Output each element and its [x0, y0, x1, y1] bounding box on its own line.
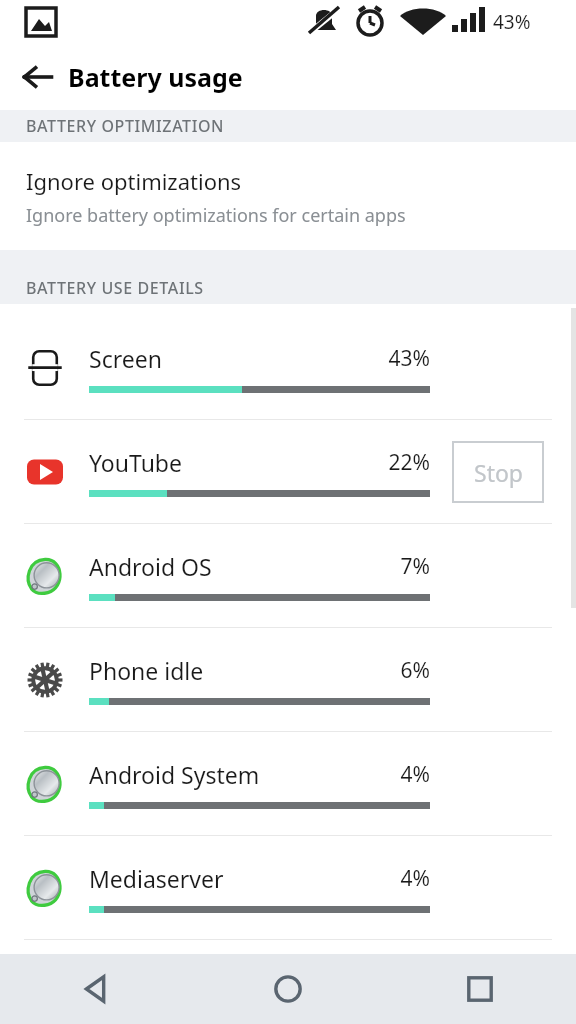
- staticText: Ignore optimizations: [26, 166, 242, 196]
- staticText: Android OS: [89, 551, 400, 582]
- staticText: Android System: [89, 759, 400, 790]
- button[interactable]: Android OS: [0, 524, 576, 627]
- staticText: 4%: [400, 760, 430, 789]
- button[interactable]: Back: [0, 954, 192, 1024]
- button[interactable]: Ignore optimizations: [0, 142, 576, 250]
- button[interactable]: Recent apps: [384, 954, 576, 1024]
- staticText: BATTERY USE DETAILS: [26, 277, 204, 299]
- staticText: 43%: [388, 344, 430, 373]
- button[interactable]: Mediaserver: [0, 836, 576, 939]
- button[interactable]: Stop: [452, 441, 544, 503]
- button[interactable]: Screen: [0, 316, 576, 419]
- staticText: Mediaserver: [89, 863, 400, 894]
- staticText: Screen: [89, 343, 388, 374]
- staticText: Ignore battery optimizations for certain…: [26, 203, 406, 228]
- staticText: Phone idle: [89, 655, 400, 686]
- staticText: 22%: [388, 448, 430, 477]
- staticText: 4%: [400, 864, 430, 893]
- staticText: Stop: [474, 457, 523, 488]
- staticText: YouTube: [89, 447, 388, 478]
- button[interactable]: Back: [14, 53, 62, 101]
- button[interactable]: Phone idle: [0, 628, 576, 731]
- button[interactable]: Home: [192, 954, 384, 1024]
- staticText: BATTERY OPTIMIZATION: [26, 115, 225, 137]
- staticText: 43%: [493, 9, 531, 35]
- staticText: 7%: [400, 552, 430, 581]
- button[interactable]: YouTube: [0, 420, 576, 523]
- staticText: Battery usage: [68, 60, 243, 94]
- staticText: 6%: [400, 656, 430, 685]
- button[interactable]: Android System: [0, 732, 576, 835]
